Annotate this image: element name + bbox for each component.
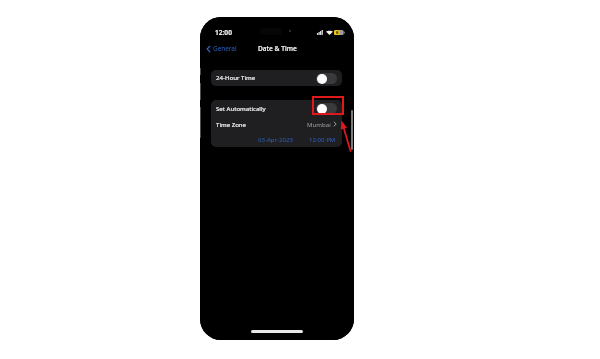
button[interactable]: General bbox=[205, 43, 238, 54]
staticText: Mumbai bbox=[307, 120, 331, 128]
staticText: Set Automatically bbox=[216, 104, 266, 112]
staticText: 12:00 PM bbox=[309, 135, 336, 143]
other: Toggle bbox=[316, 103, 337, 114]
staticText: 24-Hour Time bbox=[216, 73, 256, 81]
staticText: 12:00 bbox=[215, 28, 232, 37]
button[interactable]: 03-Apr-2023 bbox=[257, 133, 294, 145]
staticText: Date & Time bbox=[258, 44, 297, 53]
staticText: Time Zone bbox=[216, 120, 247, 128]
staticText: 03-Apr-2023 bbox=[258, 135, 293, 143]
button[interactable]: Time Zone bbox=[211, 117, 342, 133]
staticText: General bbox=[213, 44, 237, 53]
other: Annotation arrow bbox=[0, 0, 600, 359]
button[interactable]: Set Automatically bbox=[211, 100, 342, 117]
button[interactable]: 12:00 PM bbox=[308, 133, 337, 145]
other: Toggle bbox=[316, 73, 337, 84]
button[interactable]: 24-Hour Time bbox=[211, 70, 342, 86]
